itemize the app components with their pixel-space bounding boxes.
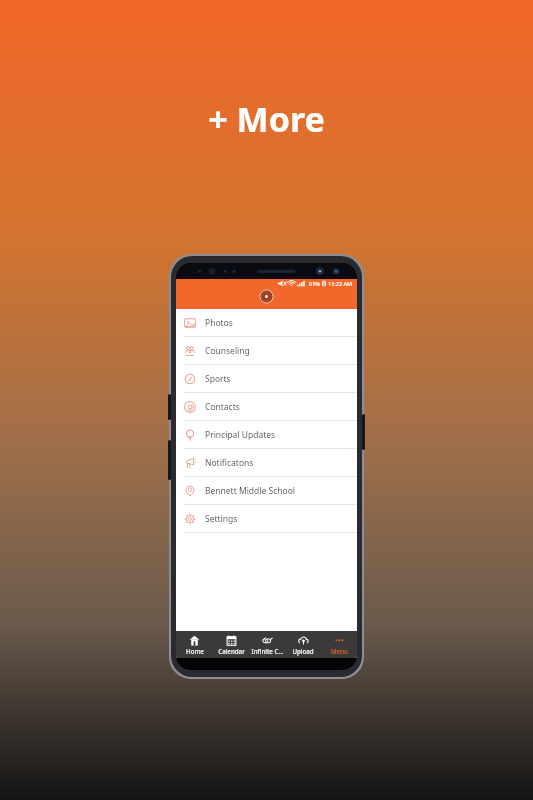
staticText: Counseling bbox=[205, 345, 250, 357]
staticText: Settings bbox=[205, 513, 238, 525]
staticText: Infinite C... bbox=[251, 647, 284, 655]
button[interactable]: Sports bbox=[176, 365, 357, 392]
staticText: Bennett Middle School bbox=[205, 485, 295, 497]
button[interactable]: Infinite C... bbox=[249, 631, 285, 658]
button[interactable]: Home bbox=[176, 631, 213, 658]
staticText: Home bbox=[186, 647, 204, 655]
staticText: Calendar bbox=[218, 647, 245, 655]
button[interactable]: Bennett Middle School bbox=[176, 477, 357, 504]
staticText: 91% bbox=[309, 280, 320, 287]
staticText: Menu bbox=[331, 647, 348, 655]
staticText: Notificatons bbox=[205, 457, 254, 469]
button[interactable]: Principal Updates bbox=[176, 421, 357, 448]
button[interactable]: Settings bbox=[176, 505, 357, 532]
button[interactable]: Menu bbox=[321, 631, 357, 658]
staticText: Sports bbox=[205, 373, 231, 385]
button[interactable]: Notificatons bbox=[176, 449, 357, 476]
staticText: Contacts bbox=[205, 401, 240, 413]
staticText: Photos bbox=[205, 317, 233, 329]
button[interactable]: Upload bbox=[285, 631, 321, 658]
button[interactable]: Photos bbox=[176, 309, 357, 336]
staticText: Upload bbox=[292, 647, 314, 655]
button[interactable]: Contacts bbox=[176, 393, 357, 420]
button[interactable]: Calendar bbox=[213, 631, 249, 658]
staticText: + More bbox=[208, 96, 325, 142]
staticText: Principal Updates bbox=[205, 429, 276, 441]
button[interactable]: Counseling bbox=[176, 337, 357, 364]
staticText: 11:22 AM bbox=[328, 280, 353, 287]
